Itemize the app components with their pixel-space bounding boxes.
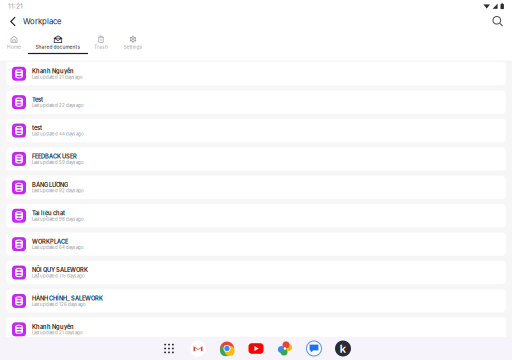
- button[interactable]: App: [335, 340, 351, 356]
- staticText: NỘI QUY SALEWORK: [32, 267, 88, 273]
- staticText: Last updated 59 days ago: [32, 160, 84, 165]
- staticText: Shared documents: [35, 44, 80, 50]
- button[interactable]: test: [6, 119, 506, 142]
- staticText: WORKPLACE: [32, 238, 68, 245]
- button[interactable]: Gmail: [190, 340, 206, 356]
- button[interactable]: HÀNH CHÍNH_ SALEWORK: [6, 289, 506, 313]
- button[interactable]: NỘI QUY SALEWORK: [6, 261, 506, 284]
- button[interactable]: YouTube: [248, 340, 264, 356]
- staticText: Last updated 98 days ago: [32, 217, 84, 222]
- staticText: FEEDBACK USER: [32, 153, 77, 160]
- button[interactable]: Home: [0, 31, 28, 61]
- staticText: BẢNG LƯƠNG: [32, 181, 68, 188]
- button[interactable]: BẢNG LƯƠNG: [6, 176, 506, 199]
- staticText: Settings: [123, 44, 142, 50]
- staticText: Last updated 64 days ago: [32, 245, 84, 250]
- staticText: Home: [7, 44, 21, 50]
- staticText: k: [339, 341, 346, 356]
- staticText: Last updated 44 days ago: [32, 131, 84, 136]
- button[interactable]: Chrome: [219, 340, 235, 356]
- button[interactable]: Shared documents: [28, 31, 88, 61]
- staticText: 11:21: [8, 2, 23, 10]
- staticText: test: [32, 125, 42, 131]
- button[interactable]: Settings: [114, 31, 152, 61]
- button[interactable]: FEEDBACK USER: [6, 147, 506, 171]
- staticText: HÀNH CHÍNH_ SALEWORK: [32, 295, 103, 302]
- button[interactable]: Trash: [88, 31, 114, 61]
- button[interactable]: Tài liệu chat: [6, 204, 506, 227]
- button[interactable]: Khanh Nguyễn: [6, 62, 506, 85]
- button[interactable]: Test: [6, 90, 506, 114]
- button[interactable]: Back: [5, 12, 21, 31]
- staticText: Last updated 92 days ago: [32, 188, 84, 193]
- staticText: Last updated 21 days ago: [32, 330, 83, 335]
- staticText: Khanh Nguyễn: [32, 68, 74, 75]
- button[interactable]: Messages: [306, 340, 322, 356]
- button[interactable]: Search: [487, 12, 509, 31]
- staticText: Last updated 21 days ago: [32, 75, 83, 80]
- staticText: Trash: [94, 44, 108, 50]
- staticText: Last updated 115 days ago: [32, 273, 85, 278]
- staticText: Tài liệu chat: [32, 210, 65, 217]
- button[interactable]: Photos: [277, 340, 293, 356]
- staticText: Last updated 126 days ago: [32, 302, 86, 307]
- staticText: Khanh Nguyễn: [32, 323, 74, 330]
- staticText: Test: [32, 96, 43, 103]
- staticText: Last updated 22 days ago: [32, 103, 84, 108]
- button[interactable]: Khanh Nguyễn: [6, 318, 506, 341]
- button[interactable]: WORKPLACE: [6, 232, 506, 256]
- button[interactable]: All apps: [161, 340, 177, 356]
- staticText: Workplace: [23, 17, 62, 26]
